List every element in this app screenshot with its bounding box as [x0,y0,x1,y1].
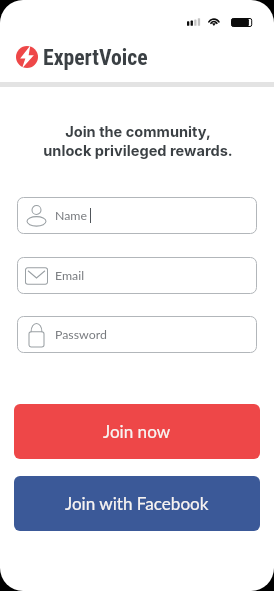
other: Wi-Fi signal [208,17,221,26]
button[interactable]: Join with Facebook [14,476,260,531]
staticText: Join now [103,421,171,442]
staticText: Email [55,268,85,283]
other: Cellular signal strength [187,18,200,26]
staticText: Join with Facebook [65,493,209,514]
staticText: Name [55,208,88,223]
staticText: Join the community, unlock privileged re… [1,123,274,160]
button[interactable]: Email [17,257,257,294]
button[interactable]: ExpertVoice [16,41,148,73]
button[interactable]: Password [17,316,257,353]
other: Battery level [231,18,253,27]
button[interactable]: Name [17,197,257,234]
staticText: Password [55,327,107,342]
staticText: ExpertVoice [43,45,148,70]
button[interactable]: Join now [14,404,260,459]
